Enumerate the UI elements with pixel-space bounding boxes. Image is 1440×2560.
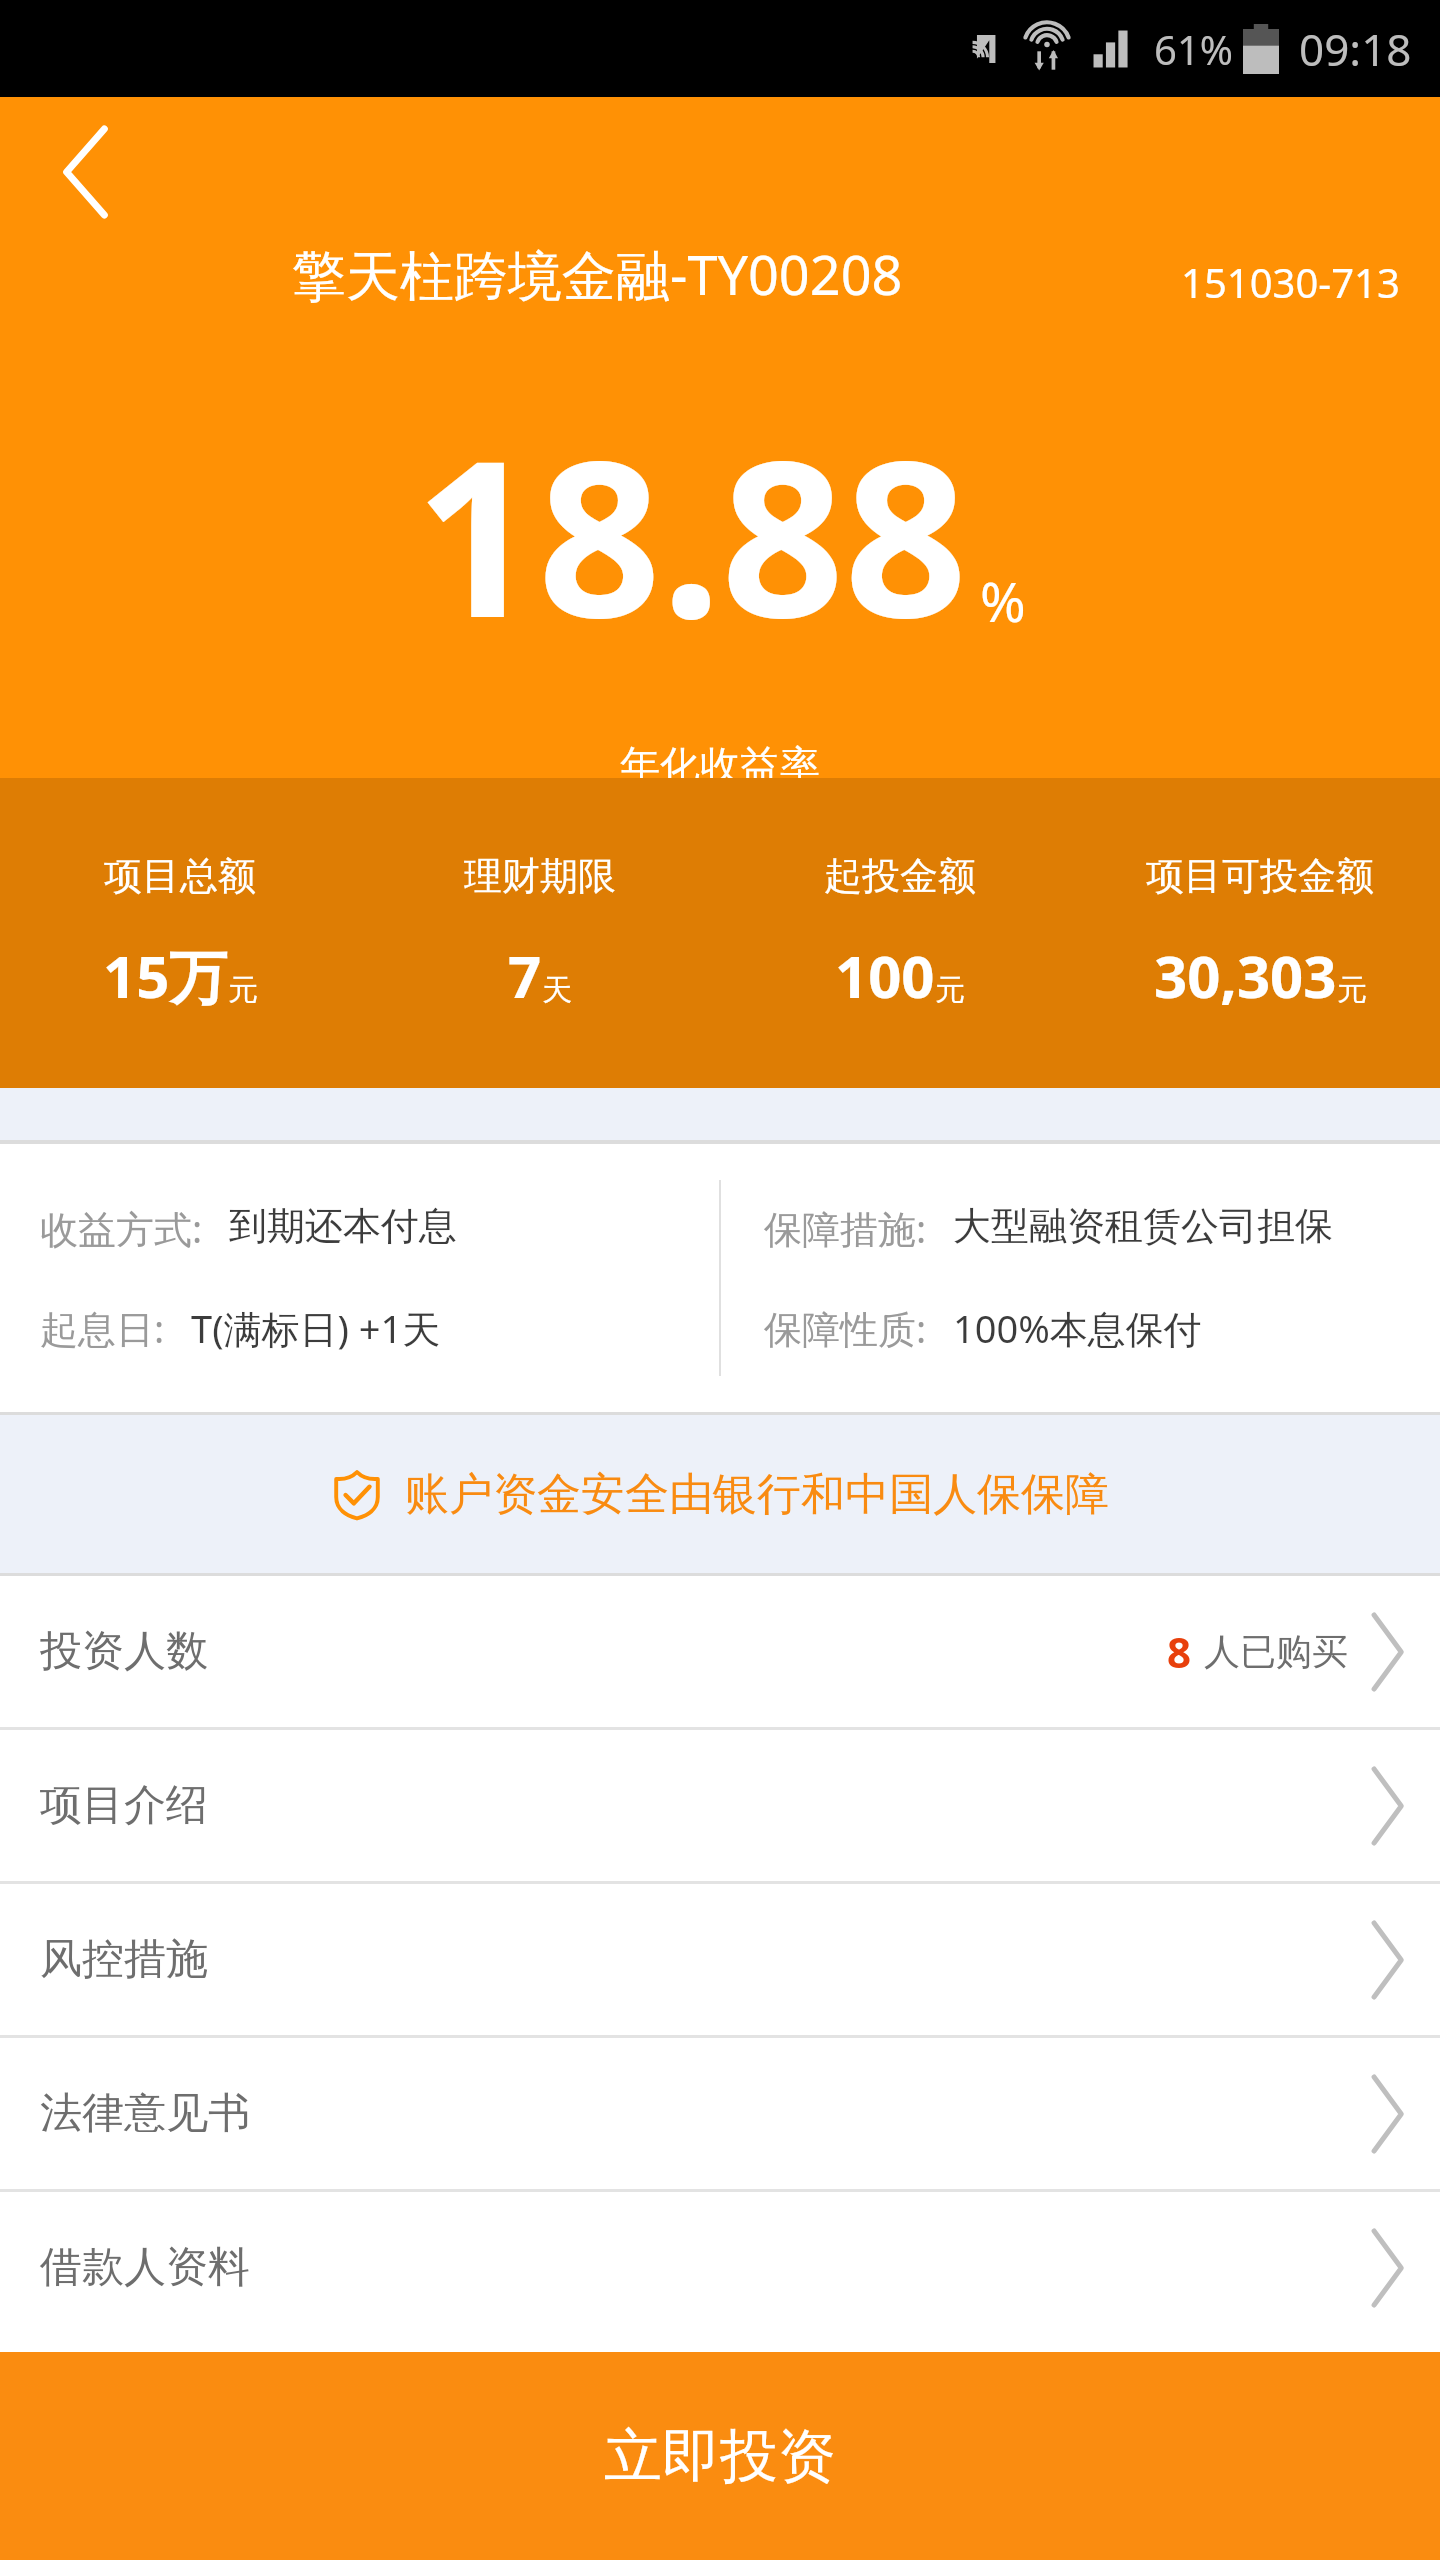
- staticText: 起息日:: [40, 1302, 165, 1354]
- staticText: 大型融资租赁公司担保: [953, 1202, 1333, 1250]
- button[interactable]: Back: [40, 127, 130, 217]
- button[interactable]: 法律意见书: [0, 2038, 1440, 2189]
- button[interactable]: 项目介绍: [0, 1730, 1440, 1881]
- staticText: 151030-713: [1181, 255, 1400, 309]
- staticText: 8: [1167, 1623, 1192, 1680]
- button[interactable]: 账户资金安全由银行和中国人保保障: [0, 1415, 1440, 1573]
- staticText: 项目可投金额: [1146, 852, 1374, 900]
- staticText: %: [980, 563, 1026, 638]
- staticText: 起投金额: [824, 852, 976, 900]
- staticText: 61%: [1154, 22, 1233, 76]
- staticText: 年化收益率: [620, 740, 820, 778]
- staticText: 保障性质:: [764, 1302, 927, 1354]
- staticText: 保障措施:: [764, 1202, 927, 1254]
- button[interactable]: 借款人资料: [0, 2192, 1440, 2343]
- staticText: 到期还本付息: [229, 1202, 457, 1250]
- staticText: 投资人数: [40, 1625, 208, 1678]
- staticText: 借款人资料: [40, 2241, 250, 2294]
- staticText: 元: [935, 971, 965, 1009]
- button[interactable]: 立即投资: [0, 2352, 1440, 2560]
- staticText: 理财期限: [464, 852, 616, 900]
- staticText: 收益方式:: [40, 1202, 203, 1254]
- button[interactable]: 风控措施: [0, 1884, 1440, 2035]
- staticText: 元: [1337, 971, 1367, 1009]
- staticText: 100%本息保付: [953, 1302, 1202, 1354]
- staticText: 账户资金安全由银行和中国人保保障: [405, 1467, 1109, 1522]
- staticText: 09:18: [1299, 19, 1412, 79]
- staticText: 7: [508, 936, 542, 1015]
- staticText: 立即投资: [604, 2420, 836, 2493]
- staticText: 15万: [103, 936, 228, 1015]
- staticText: T(满标日) +1天: [191, 1302, 441, 1354]
- staticText: 30,303: [1154, 936, 1337, 1015]
- staticText: 天: [542, 971, 572, 1009]
- staticText: 100: [835, 936, 935, 1015]
- staticText: 18.88: [415, 387, 968, 680]
- staticText: 元: [228, 971, 258, 1009]
- staticText: 擎天柱跨境金融-TY00208: [292, 237, 903, 311]
- staticText: 法律意见书: [40, 2087, 250, 2140]
- staticText: 风控措施: [40, 1933, 208, 1986]
- staticText: 项目介绍: [40, 1779, 208, 1832]
- staticText: 人已购买: [1204, 1629, 1348, 1674]
- button[interactable]: 投资人数: [0, 1576, 1440, 1727]
- staticText: 项目总额: [104, 852, 256, 900]
